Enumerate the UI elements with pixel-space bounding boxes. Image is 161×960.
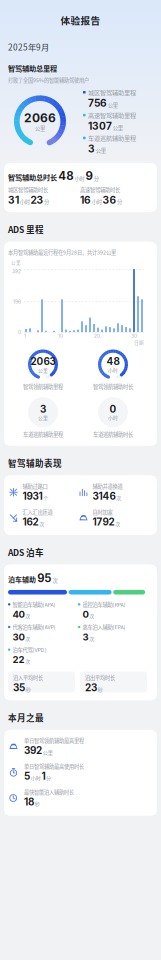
staticText: 次: [39, 520, 44, 527]
staticText: 0: [83, 608, 89, 620]
staticText: 35: [13, 682, 25, 694]
staticText: 次: [89, 635, 94, 642]
staticText: 秒: [26, 686, 31, 693]
staticText: 高速智驾辅助里程: [88, 111, 136, 120]
staticText: 自时加塞: [92, 508, 112, 516]
staticText: 次: [89, 612, 94, 619]
staticText: 小时: [108, 367, 118, 374]
staticText: 智驾领航辅助里程: [23, 382, 63, 390]
staticText: 智驾辅助总时长: [8, 172, 57, 182]
staticText: 196: [13, 299, 21, 305]
staticText: 756: [88, 97, 107, 109]
staticText: 次: [116, 494, 121, 501]
staticText: 公里: [11, 259, 21, 266]
staticText: 最快智能泊入辅助时长: [24, 788, 74, 796]
staticText: 车道巡航辅助里程: [88, 133, 136, 142]
staticText: 车道巡航辅助时长: [93, 430, 133, 438]
staticText: 小时: [92, 198, 102, 206]
staticText: 0: [109, 403, 116, 415]
staticText: 分: [46, 774, 51, 781]
staticText: 遥控泊车辅助(RPA): [83, 600, 126, 608]
staticText: 公里: [113, 124, 123, 131]
staticText: 22: [13, 654, 25, 665]
staticText: 9: [86, 169, 93, 183]
staticText: 2066: [24, 111, 56, 125]
staticText: 1792: [92, 516, 114, 528]
staticText: 分: [94, 174, 99, 182]
staticText: 1307: [88, 120, 112, 132]
staticText: 公里: [43, 748, 53, 756]
staticText: 城区智驾辅助里程: [88, 88, 136, 97]
staticText: 日期: [134, 339, 144, 345]
staticText: 23: [85, 682, 97, 694]
staticText: 辅助过路口: [22, 482, 47, 490]
staticText: 16: [80, 194, 91, 206]
staticText: 36: [102, 194, 116, 206]
staticText: 代客泊车辅助(AVP): [13, 623, 56, 631]
staticText: 公里: [38, 367, 48, 374]
staticText: 辅助并道换道: [92, 482, 122, 490]
staticText: 392: [12, 269, 21, 274]
staticText: 1931: [22, 490, 42, 502]
staticText: 泊车代驾(VPD): [13, 646, 47, 653]
staticText: 392: [24, 744, 42, 756]
staticText: 2025年9月: [8, 41, 49, 53]
staticText: 5: [24, 770, 30, 782]
staticText: 20: [94, 333, 100, 339]
staticText: 3146: [92, 490, 115, 502]
staticText: 48: [58, 169, 73, 183]
staticText: 小时: [74, 174, 84, 182]
staticText: 162: [22, 516, 38, 528]
staticText: 小时: [20, 198, 30, 206]
staticText: 30: [131, 333, 137, 339]
staticText: 公里: [38, 414, 48, 421]
staticText: 31: [8, 194, 19, 206]
staticText: 公里: [108, 101, 118, 109]
staticText: 智驾领航辅助时长: [93, 382, 133, 390]
staticText: 1: [41, 770, 45, 782]
staticText: 3: [83, 631, 89, 643]
staticText: 分: [117, 198, 122, 206]
staticText: 18: [24, 796, 34, 808]
staticText: 本月之最: [8, 711, 44, 724]
staticText: 30: [13, 631, 25, 643]
staticText: 次: [115, 520, 120, 527]
staticText: 城区智驾辅助时长: [8, 186, 48, 193]
staticText: 泊车辅助: [8, 574, 36, 584]
staticText: 体验报告: [60, 13, 100, 27]
staticText: 车道巡航辅助里程: [23, 430, 63, 438]
staticText: 分: [44, 198, 49, 206]
staticText: 48: [106, 355, 119, 367]
staticText: 次: [25, 612, 30, 619]
staticText: 公里: [96, 147, 106, 154]
staticText: 3: [40, 403, 46, 415]
staticText: 95: [37, 571, 51, 585]
staticText: 小时: [31, 774, 41, 781]
staticText: 单日智驾领航辅助最高里程: [24, 737, 84, 744]
staticText: 秒: [98, 686, 103, 693]
staticText: 泊出平均时长: [85, 674, 115, 681]
staticText: 打败了全国95%的智能辅助驾驶用户: [8, 76, 89, 84]
staticText: ADS 里程: [8, 223, 44, 236]
staticText: ADS 泊车: [8, 546, 44, 558]
staticText: 10: [58, 333, 63, 339]
staticText: 小时: [108, 414, 118, 421]
staticText: 汇入汇出匝道: [22, 508, 52, 516]
staticText: 次: [25, 635, 30, 642]
staticText: 1: [24, 333, 26, 339]
staticText: 2063: [30, 355, 55, 367]
staticText: 次: [52, 577, 57, 584]
staticText: 个: [43, 494, 48, 501]
staticText: 本月智驾辅助最远行程在9月28日，共计392公里: [8, 249, 116, 256]
staticText: 离车泊入辅助(EPA): [83, 623, 126, 631]
staticText: 智能泊车辅助(APA): [13, 600, 56, 608]
staticText: 40: [13, 608, 25, 620]
staticText: 单日智驾辅助最高使用时长: [24, 762, 84, 770]
staticText: 3: [88, 143, 95, 155]
staticText: 0: [18, 329, 21, 335]
staticText: 智驾辅助表现: [8, 457, 62, 469]
staticText: 智驾辅助总里程: [8, 63, 57, 73]
staticText: 高速智驾辅助时长: [80, 186, 120, 193]
staticText: 泊入平均时长: [13, 674, 43, 681]
staticText: 公里: [35, 124, 45, 132]
